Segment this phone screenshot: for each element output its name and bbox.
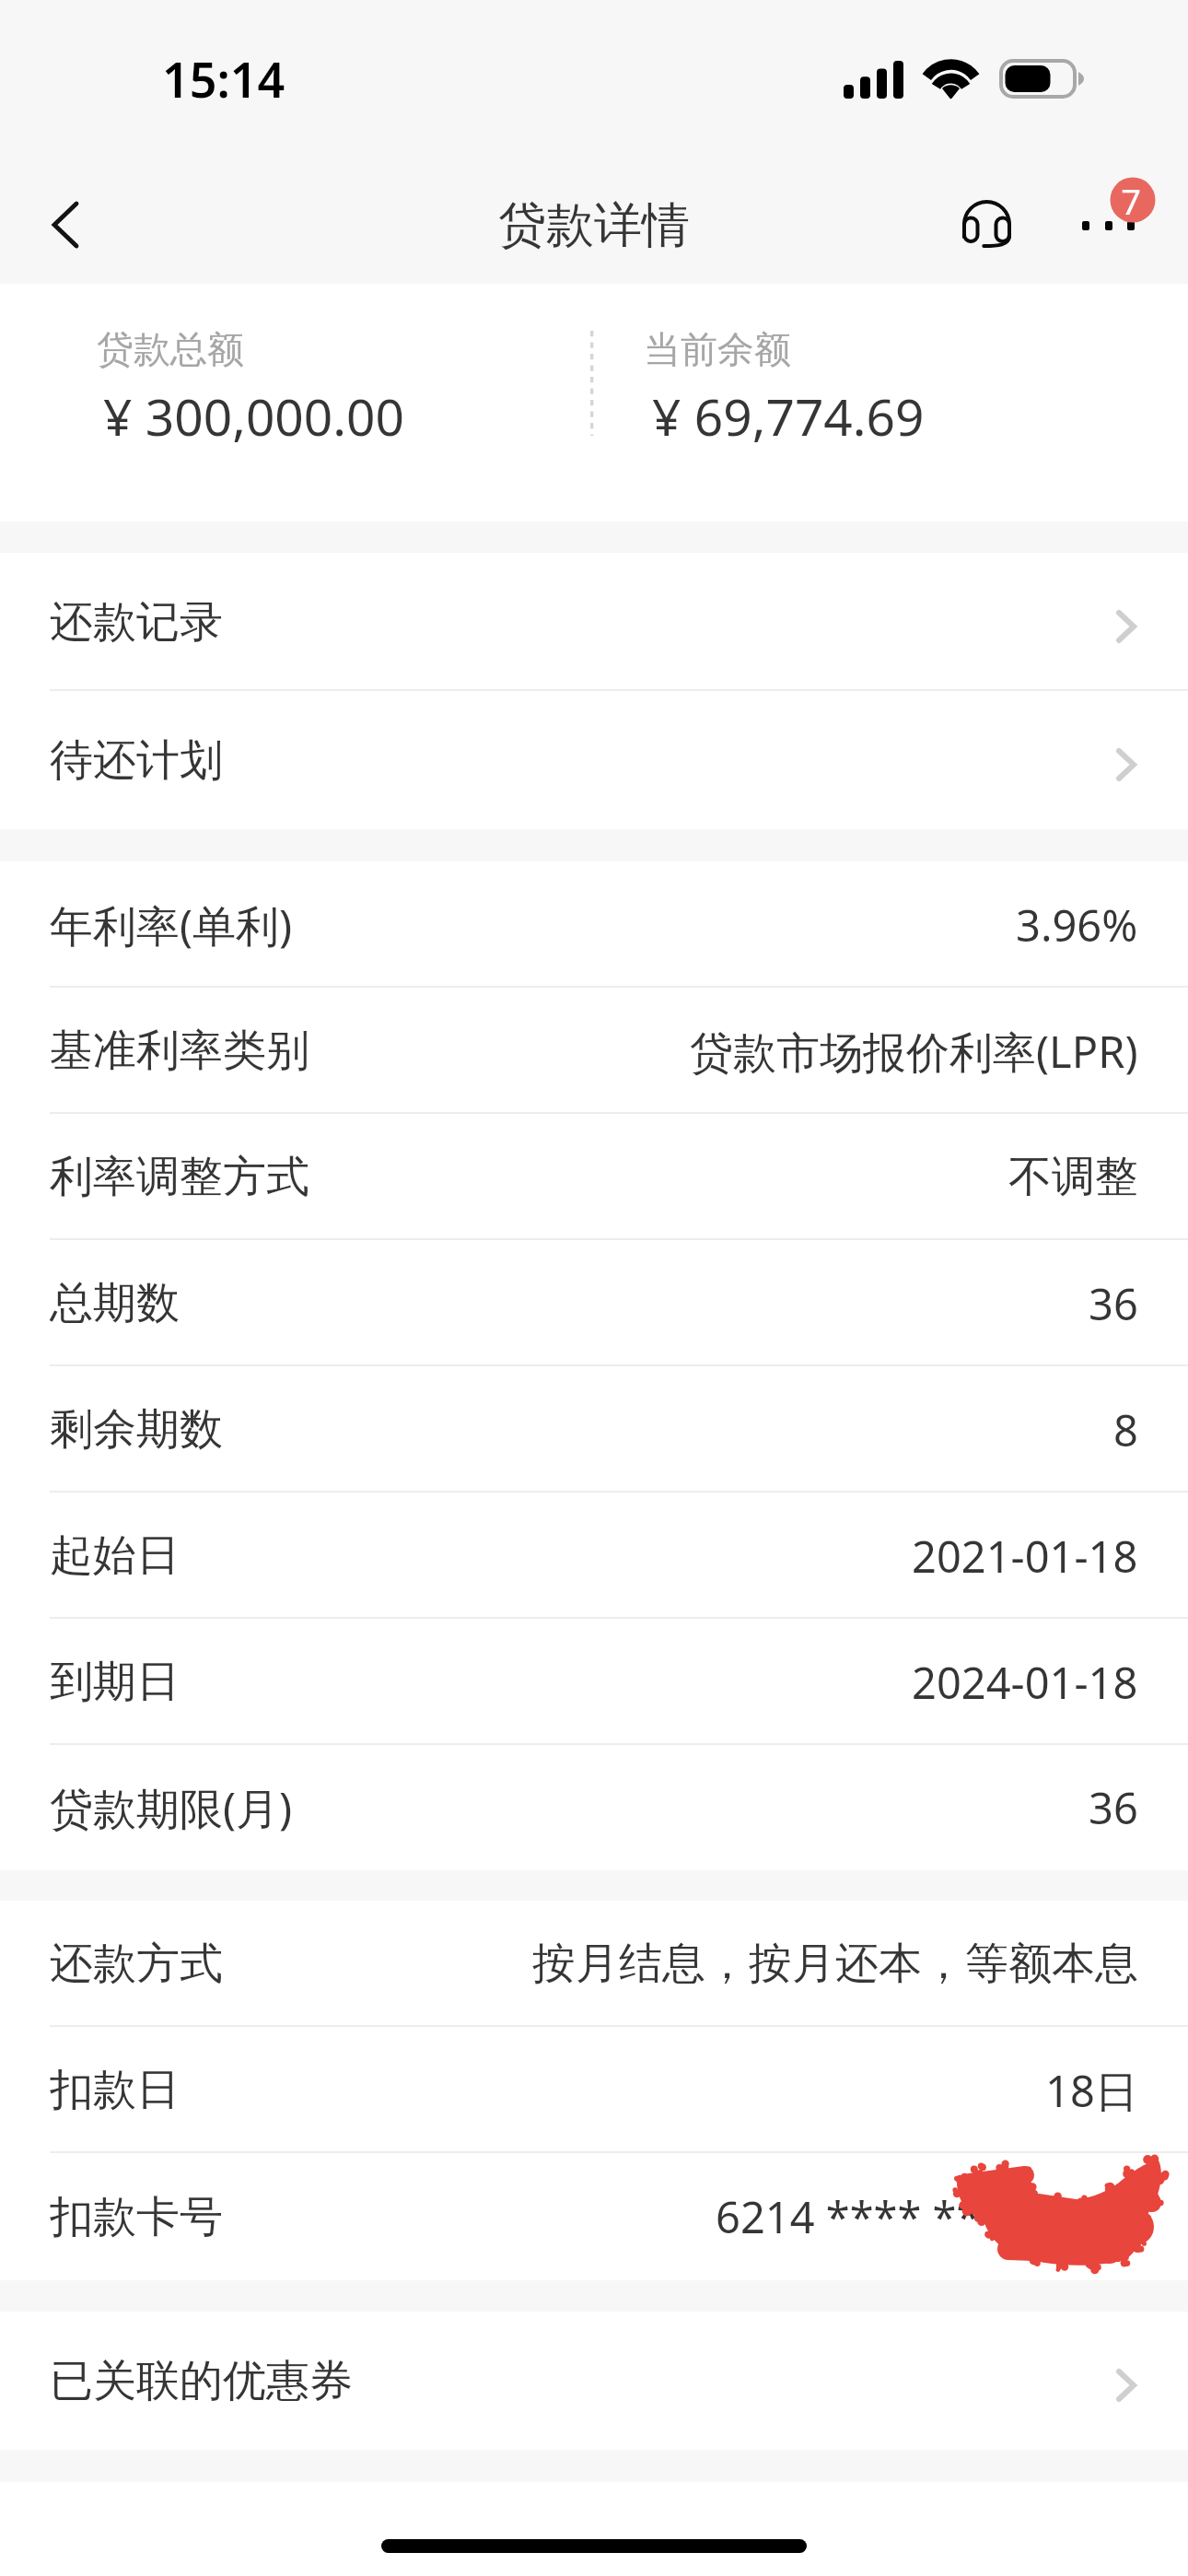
staticText: 总期数: [50, 1276, 180, 1330]
staticText: 2024-01-18: [912, 1653, 1138, 1712]
staticText: 6214 **** **** 5678: [716, 2187, 1138, 2246]
staticText: 基准利率类别: [50, 1024, 309, 1078]
staticText: 贷款总额: [97, 326, 244, 372]
staticText: 贷款市场报价利率(LPR): [690, 1022, 1138, 1081]
staticText: ¥ 300,000.00: [103, 381, 404, 451]
button[interactable]: Back: [0, 147, 111, 284]
staticText: 按月结息，按月还本，等额本息: [532, 1937, 1138, 1991]
button[interactable]: 已关联的优惠券: [0, 2312, 1188, 2450]
staticText: 当前余额: [644, 326, 791, 372]
staticText: 18日: [1045, 2061, 1138, 2120]
staticText: 7: [1121, 177, 1141, 225]
staticText: 不调整: [1008, 1150, 1138, 1204]
staticText: ¥ 69,774.69: [652, 381, 925, 451]
staticText: 扣款日: [50, 2063, 180, 2117]
staticText: 到期日: [50, 1655, 180, 1709]
staticText: 还款记录: [50, 595, 223, 650]
staticText: 15:14: [162, 46, 285, 111]
staticText: 待还计划: [50, 733, 223, 788]
staticText: 贷款详情: [498, 195, 690, 256]
staticText: 起始日: [50, 1528, 180, 1583]
button[interactable]: 还款记录: [0, 553, 1188, 691]
staticText: 剩余期数: [50, 1402, 223, 1457]
staticText: 36: [1089, 1274, 1138, 1333]
staticText: 利率调整方式: [50, 1150, 309, 1204]
staticText: 3.96%: [1016, 896, 1138, 954]
staticText: 已关联的优惠券: [50, 2354, 353, 2408]
staticText: 扣款卡号: [50, 2190, 223, 2244]
button[interactable]: 待还计划: [0, 691, 1188, 829]
button[interactable]: Customer service: [938, 147, 1034, 284]
staticText: 2021-01-18: [912, 1527, 1138, 1586]
button[interactable]: More options, 7 notifications: [1064, 147, 1165, 284]
staticText: 年利率(单利): [50, 896, 293, 954]
staticText: 贷款期限(月): [50, 1778, 293, 1837]
staticText: 8: [1113, 1400, 1138, 1459]
staticText: 还款方式: [50, 1937, 223, 1991]
staticText: 36: [1089, 1778, 1138, 1837]
